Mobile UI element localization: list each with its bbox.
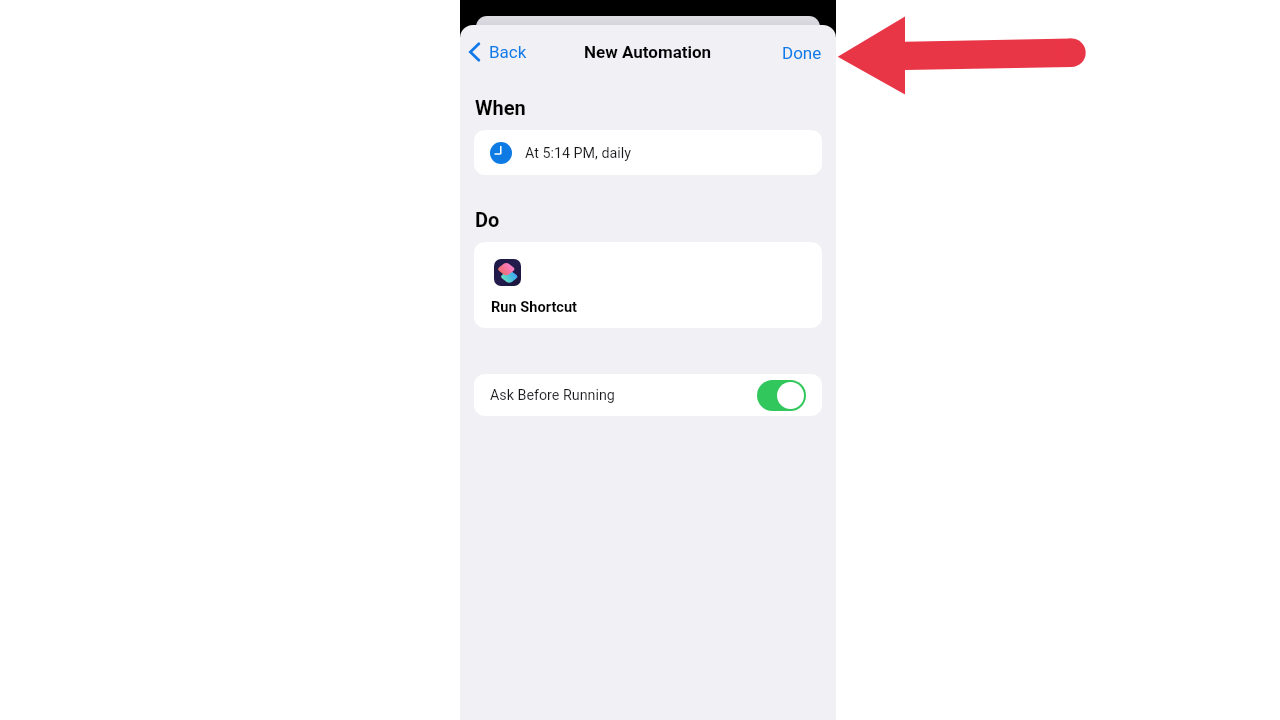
staticText: When [475, 96, 526, 119]
button[interactable]: Done [779, 39, 825, 67]
button[interactable]: Ask Before Running toggle [757, 380, 806, 411]
staticText: Ask Before Running [490, 387, 615, 404]
staticText: Run Shortcut [491, 298, 578, 315]
button[interactable]: Run Shortcut [474, 242, 822, 328]
staticText: Do [475, 208, 500, 231]
staticText: At 5:14 PM, daily [525, 145, 631, 162]
staticText: Done [782, 43, 822, 63]
button[interactable]: At 5:14 PM, daily [474, 130, 822, 175]
staticText: Back [489, 42, 527, 62]
other: Annotation arrow pointing at Done [836, 14, 1086, 98]
button[interactable]: Ask Before Running [474, 374, 822, 416]
staticText: New Automation [584, 42, 712, 62]
button[interactable]: Back [466, 38, 530, 66]
